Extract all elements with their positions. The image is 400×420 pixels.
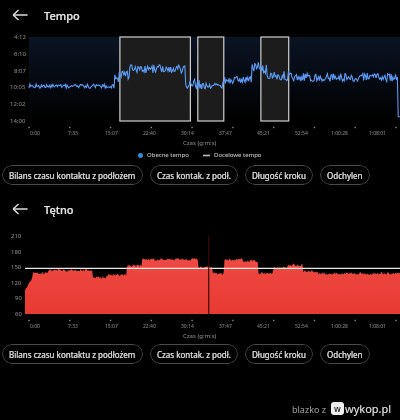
staticText: 1:08:01	[369, 130, 386, 137]
staticText: 6:10	[14, 50, 26, 58]
button[interactable]: Długość kroku	[245, 344, 313, 364]
staticText: 7:33	[68, 323, 78, 330]
staticText: 14:00	[10, 117, 26, 125]
staticText: wykop.pl	[345, 401, 392, 416]
staticText: 0:00	[30, 130, 40, 137]
staticText: Bilans czasu kontaktu z podłożem	[9, 349, 136, 360]
staticText: 37:47	[219, 130, 232, 137]
staticText: blazko z	[292, 403, 326, 415]
staticText: Bilans czasu kontaktu z podłożem	[9, 170, 136, 181]
staticText: 1:00:28	[331, 130, 348, 137]
staticText: 30:14	[181, 130, 194, 137]
staticText: Czas (g:m:s)	[183, 139, 217, 147]
staticText: Obecne tempo	[147, 151, 189, 159]
button[interactable]: Czas kontak. z podł.	[150, 344, 238, 364]
button[interactable]: Bilans czasu kontaktu z podłożem	[2, 344, 143, 364]
staticText: Tętno	[44, 202, 74, 217]
button[interactable]: Bilans czasu kontaktu z podłożem	[2, 165, 143, 185]
staticText: Tempo	[44, 8, 80, 23]
staticText: 120	[11, 279, 22, 287]
button[interactable]: Odchylen	[320, 165, 370, 185]
staticText: 12:02	[10, 100, 26, 108]
staticText: 150	[11, 263, 22, 271]
staticText: 10:05	[10, 83, 26, 91]
staticText: 210	[11, 232, 22, 240]
staticText: 90	[15, 294, 22, 302]
staticText: Czas (g:m:s)	[183, 332, 217, 340]
staticText: 180	[11, 248, 22, 256]
staticText: 1:00:28	[331, 323, 348, 330]
staticText: 1:08:01	[369, 323, 386, 330]
staticText: Czas kontak. z podł.	[157, 349, 231, 360]
button[interactable]: Długość kroku	[245, 165, 313, 185]
staticText: Czas kontak. z podł.	[157, 170, 231, 181]
staticText: 4:12	[14, 33, 26, 41]
staticText: 52:54	[295, 323, 308, 330]
button[interactable]: Odchylen	[320, 344, 370, 364]
staticText: w	[334, 403, 341, 414]
staticText: Odchylen	[327, 170, 363, 181]
staticText: 15:07	[105, 323, 118, 330]
staticText: Długość kroku	[252, 349, 306, 360]
staticText: 8:07	[14, 67, 26, 75]
staticText: 22:40	[143, 323, 156, 330]
button[interactable]: Back	[8, 197, 32, 221]
button[interactable]: Czas kontak. z podł.	[150, 165, 238, 185]
staticText: 45:21	[257, 323, 270, 330]
staticText: 45:21	[257, 130, 270, 137]
staticText: 60	[15, 310, 22, 318]
staticText: 37:47	[219, 323, 232, 330]
staticText: 0:00	[30, 323, 40, 330]
staticText: 52:54	[295, 130, 308, 137]
staticText: 30:14	[181, 323, 194, 330]
staticText: Odchylen	[327, 349, 363, 360]
staticText: 7:33	[68, 130, 78, 137]
staticText: 22:40	[143, 130, 156, 137]
button[interactable]: Back	[8, 3, 32, 27]
staticText: Docelowe tempo	[214, 151, 262, 159]
staticText: Długość kroku	[252, 170, 306, 181]
staticText: 15:07	[105, 130, 118, 137]
